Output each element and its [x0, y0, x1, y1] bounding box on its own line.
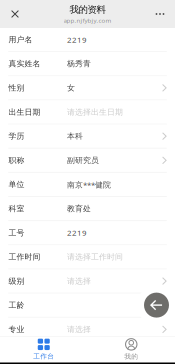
staticText: app.njfybjy.com: [63, 16, 111, 24]
button[interactable]: Close: [5, 3, 25, 25]
button[interactable]: 工作台: [0, 339, 87, 361]
staticText: 副研究员: [67, 155, 99, 165]
staticText: 请选择出生日期: [67, 107, 123, 117]
button[interactable]: 工作时间: [0, 245, 175, 269]
staticText: 工号: [8, 228, 24, 238]
staticText: 工作时间: [8, 252, 40, 262]
staticText: 工作台: [33, 352, 54, 361]
staticText: 科室: [8, 204, 24, 214]
staticText: 2219: [67, 227, 87, 238]
staticText: 学历: [8, 131, 24, 141]
button[interactable]: 级别: [0, 269, 175, 294]
button[interactable]: 科室: [0, 197, 175, 221]
staticText: 工龄: [8, 300, 24, 310]
staticText: 级别: [8, 276, 24, 286]
staticText: 教育处: [67, 204, 91, 214]
button[interactable]: 单位: [0, 173, 175, 197]
button[interactable]: 工龄: [0, 294, 175, 318]
staticText: 出生日期: [8, 107, 40, 117]
staticText: 女: [67, 83, 75, 93]
button[interactable]: 真实姓名: [0, 52, 175, 76]
staticText: 专业: [8, 324, 24, 334]
staticText: 职称: [8, 155, 24, 165]
button[interactable]: 用户名: [0, 28, 175, 52]
staticText: 杨秀青: [67, 59, 91, 69]
staticText: 性别: [8, 83, 24, 93]
staticText: 请选择: [67, 324, 91, 334]
button[interactable]: 性别: [0, 76, 175, 100]
staticText: 请选择工作时间: [67, 252, 123, 262]
button[interactable]: Back: [139, 289, 174, 322]
staticText: 南京***健院: [67, 179, 111, 190]
staticText: 我的: [124, 352, 138, 361]
staticText: 用户名: [8, 35, 32, 44]
staticText: 真实姓名: [8, 59, 40, 69]
staticText: 请选择: [67, 276, 91, 286]
button[interactable]: 我的: [87, 339, 175, 361]
staticText: 单位: [8, 179, 24, 189]
staticText: 我的资料: [69, 4, 105, 15]
button[interactable]: 专业: [0, 318, 175, 342]
staticText: 本科: [67, 131, 83, 141]
button[interactable]: 出生日期: [0, 100, 175, 124]
button[interactable]: 职称: [0, 149, 175, 173]
staticText: 2219: [67, 34, 87, 45]
button[interactable]: More options: [150, 3, 170, 25]
button[interactable]: 学历: [0, 125, 175, 149]
button[interactable]: 工号: [0, 221, 175, 245]
